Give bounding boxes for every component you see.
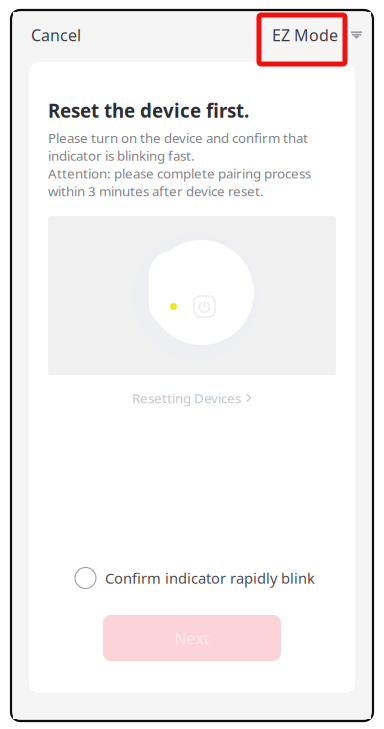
staticText: Attention: please complete pairing proce… xyxy=(48,164,311,182)
button[interactable]: Next xyxy=(103,615,281,661)
button[interactable]: Resetting Devices xyxy=(48,384,336,412)
staticText: Next xyxy=(174,627,209,649)
staticText: Confirm indicator rapidly blink xyxy=(105,568,315,588)
staticText: EZ Mode xyxy=(272,24,338,46)
staticText: Resetting Devices xyxy=(132,389,241,407)
button[interactable]: Confirm indicator rapidly blink xyxy=(75,564,315,592)
staticText: within 3 minutes after device reset. xyxy=(48,182,264,200)
staticText: Please turn on the device and confirm th… xyxy=(48,129,308,147)
staticText: indicator is blinking fast. xyxy=(48,147,195,164)
button[interactable]: Pairing mode xyxy=(344,12,371,58)
button[interactable]: Cancel xyxy=(13,12,93,58)
staticText: Reset the device first. xyxy=(48,98,249,123)
button[interactable]: EZ Mode xyxy=(266,12,344,58)
staticText: Cancel xyxy=(31,24,81,46)
